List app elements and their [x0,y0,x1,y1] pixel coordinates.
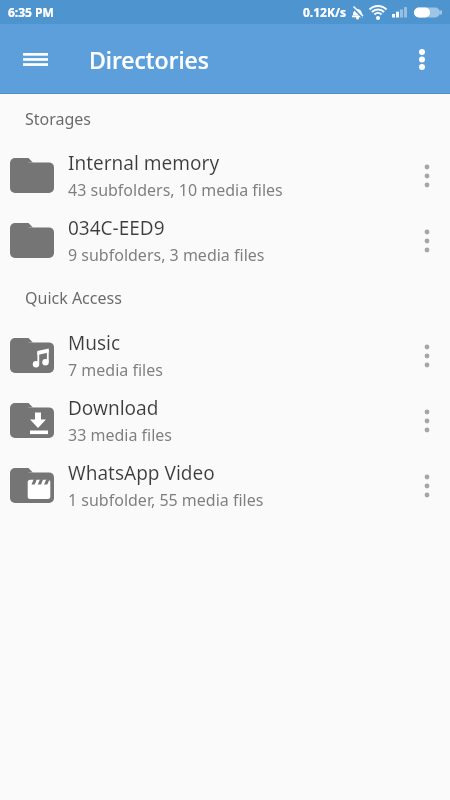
staticText: 034C-EED9 [68,215,165,241]
staticText: WhatsApp Video [68,460,215,486]
staticText: Storages [25,108,92,130]
button[interactable] [421,474,433,498]
button[interactable] [421,409,433,433]
button[interactable] [0,24,70,94]
staticText: 1 subfolder, 55 media files [68,489,264,511]
staticText: Download [68,395,159,421]
button[interactable]: Download [0,388,450,453]
staticText: 43 subfolders, 10 media files [68,179,283,201]
staticText: Music [68,330,121,356]
staticText: Directories [89,44,209,75]
staticText: Quick Access [25,287,122,309]
button[interactable] [421,344,433,368]
staticText: Internal memory [68,150,220,176]
staticText: 6:35 PM [8,4,54,20]
button[interactable] [421,164,433,188]
button[interactable]: Music [0,323,450,388]
staticText: 7 media files [68,359,163,381]
button[interactable]: WhatsApp Video [0,453,450,518]
staticText: 9 subfolders, 3 media files [68,244,265,266]
button[interactable] [421,229,433,253]
button[interactable]: 034C-EED9 [0,208,450,273]
button[interactable]: Internal memory [0,143,450,208]
staticText: 33 media files [68,424,173,446]
staticText: 0.12K/s [303,4,346,20]
button[interactable] [394,24,450,94]
